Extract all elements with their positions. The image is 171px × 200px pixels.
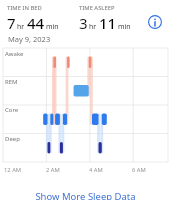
staticText: min: [118, 22, 131, 32]
staticText: TIME IN BED: [7, 4, 42, 12]
staticText: May 9, 2023: [8, 34, 51, 44]
staticText: 12 AM: [4, 166, 22, 174]
staticText: min: [46, 22, 59, 32]
staticText: REM: [5, 78, 18, 86]
staticText: 4 AM: [89, 166, 103, 174]
staticText: 6 AM: [132, 166, 146, 174]
staticText: Awake: [5, 50, 24, 58]
staticText: 3: [79, 13, 88, 33]
staticText: 7: [7, 13, 16, 33]
staticText: hr: [89, 22, 97, 32]
button[interactable]: Information: [145, 12, 165, 32]
staticText: 2 AM: [46, 166, 60, 174]
staticText: TIME ASLEEP: [79, 4, 115, 12]
staticText: Show More Sleep Data: [35, 190, 136, 200]
button[interactable]: Show More Sleep Data: [0, 190, 171, 200]
staticText: hr: [17, 22, 25, 32]
staticText: 44: [27, 13, 45, 33]
staticText: Core: [5, 106, 19, 114]
staticText: Deep: [5, 135, 20, 143]
staticText: 11: [99, 13, 117, 33]
